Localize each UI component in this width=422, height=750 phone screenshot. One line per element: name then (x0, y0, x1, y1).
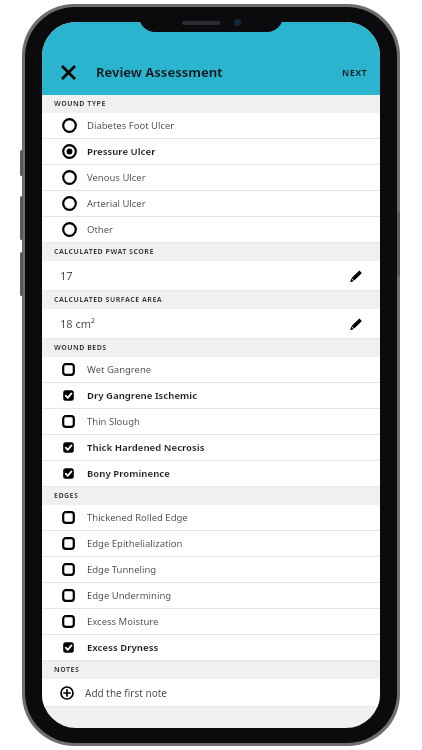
staticText: Add the first note (85, 686, 167, 700)
staticText: NEXT (342, 66, 368, 78)
button[interactable]: Edge Epithelialization (42, 531, 380, 556)
staticText: 18 cm² (60, 316, 346, 331)
button[interactable]: Thin Slough (42, 409, 380, 434)
button[interactable]: Add the first note (42, 679, 380, 706)
button[interactable]: Edge Tunneling (42, 557, 380, 582)
button[interactable]: Other (42, 217, 380, 242)
staticText: CALCULATED SURFACE AREA (54, 295, 163, 305)
button[interactable]: 17 (42, 261, 380, 290)
button[interactable]: Thickened Rolled Edge (42, 505, 380, 530)
staticText: EDGES (54, 491, 79, 501)
staticText: Other (87, 223, 114, 236)
button[interactable]: Wet Gangrene (42, 357, 380, 382)
button[interactable]: NEXT (330, 60, 380, 84)
staticText: Excess Moisture (87, 615, 159, 628)
staticText: Wet Gangrene (87, 363, 152, 376)
staticText: Thickened Rolled Edge (87, 511, 188, 524)
button[interactable]: Edit (346, 314, 366, 334)
staticText: Excess Dryness (87, 641, 159, 654)
staticText: WOUND TYPE (54, 99, 106, 109)
staticText: Pressure Ulcer (87, 145, 156, 158)
staticText: Thick Hardened Necrosis (87, 441, 205, 454)
staticText: NOTES (54, 665, 80, 675)
staticText: WOUND BEDS (54, 343, 107, 353)
button[interactable]: Thick Hardened Necrosis (42, 435, 380, 460)
staticText: Edge Epithelialization (87, 537, 183, 550)
staticText: Edge Tunneling (87, 563, 157, 576)
button[interactable]: Close (54, 58, 82, 86)
staticText: Venous Ulcer (87, 171, 146, 184)
staticText: Dry Gangrene Ischemic (87, 389, 198, 402)
staticText: 17 (60, 268, 346, 283)
button[interactable]: Pressure Ulcer (42, 139, 380, 164)
staticText: Review Assessment (96, 63, 223, 81)
button[interactable]: 18 cm² (42, 309, 380, 338)
button[interactable]: Arterial Ulcer (42, 191, 380, 216)
button[interactable]: Excess Dryness (42, 635, 380, 660)
button[interactable]: Diabetes Foot Ulcer (42, 113, 380, 138)
button[interactable]: Edit (346, 266, 366, 286)
staticText: Diabetes Foot Ulcer (87, 119, 175, 132)
button[interactable]: Excess Moisture (42, 609, 380, 634)
button[interactable]: Bony Prominence (42, 461, 380, 486)
staticText: Bony Prominence (87, 467, 170, 480)
button[interactable]: Dry Gangrene Ischemic (42, 383, 380, 408)
button[interactable]: Venous Ulcer (42, 165, 380, 190)
staticText: Thin Slough (87, 415, 140, 428)
staticText: Arterial Ulcer (87, 197, 146, 210)
staticText: Edge Undermining (87, 589, 172, 602)
staticText: CALCULATED PWAT SCORE (54, 247, 154, 257)
button[interactable]: Edge Undermining (42, 583, 380, 608)
